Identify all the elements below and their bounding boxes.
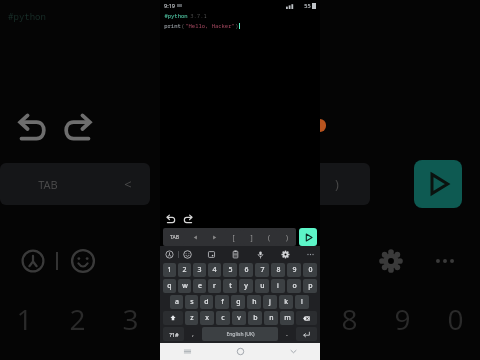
staticText: 8 xyxy=(341,300,358,338)
button[interactable]: Gboard xyxy=(164,249,175,260)
button[interactable]: 8 xyxy=(271,263,285,277)
button[interactable]: Home xyxy=(214,343,267,360)
staticText: 1 xyxy=(16,300,33,338)
staticText: u xyxy=(260,281,265,291)
staticText: n xyxy=(269,313,274,323)
staticText: z xyxy=(190,313,194,323)
staticText: m xyxy=(284,313,291,323)
staticText: [ xyxy=(232,233,235,242)
button[interactable]: ?1# xyxy=(163,327,184,341)
staticText: w xyxy=(182,281,188,291)
button[interactable]: 7 xyxy=(255,263,269,277)
button[interactable]: Voice input xyxy=(255,249,266,260)
button[interactable]: l xyxy=(295,295,309,309)
button[interactable]: e xyxy=(193,279,206,293)
button[interactable]: Run xyxy=(299,228,317,246)
button[interactable]: h xyxy=(247,295,261,309)
button[interactable]: t xyxy=(223,279,237,293)
staticText: 6 xyxy=(244,265,249,275)
staticText: #python xyxy=(164,12,188,19)
button[interactable]: Move right xyxy=(205,228,224,246)
button[interactable]: [ xyxy=(225,229,241,245)
button[interactable]: ] xyxy=(243,229,259,245)
button[interactable]: b xyxy=(248,311,262,325)
button[interactable]: Backspace xyxy=(296,311,317,325)
button[interactable]: Clipboard xyxy=(230,249,241,260)
button[interactable]: j xyxy=(263,295,277,309)
staticText: 3 xyxy=(197,265,202,275)
staticText: ) xyxy=(335,175,339,193)
button[interactable]: p xyxy=(303,279,317,293)
button[interactable]: 2 xyxy=(178,263,191,277)
button[interactable]: f xyxy=(215,295,229,309)
button[interactable]: 3 xyxy=(193,263,206,277)
staticText: 4 xyxy=(212,265,217,275)
button[interactable]: 9 xyxy=(287,263,301,277)
button[interactable]: q xyxy=(163,279,176,293)
staticText: ?1# xyxy=(169,331,179,338)
staticText: ) xyxy=(235,22,239,29)
staticText: o xyxy=(292,281,297,291)
button[interactable]: 5 xyxy=(223,263,237,277)
staticText: 55 xyxy=(304,2,311,9)
button[interactable]: v xyxy=(232,311,246,325)
button[interactable]: Emoji xyxy=(182,249,193,260)
button[interactable]: More options xyxy=(305,249,316,260)
staticText: 3.7.1 xyxy=(190,12,207,19)
staticText: p xyxy=(308,281,313,291)
button[interactable]: a xyxy=(170,295,183,309)
staticText: 0 xyxy=(308,265,313,275)
staticText: y xyxy=(244,281,248,291)
button[interactable]: u xyxy=(255,279,269,293)
button[interactable]: r xyxy=(208,279,221,293)
button[interactable]: ( xyxy=(261,229,277,245)
button[interactable]: Recents xyxy=(160,343,214,360)
button[interactable]: Settings xyxy=(280,249,291,260)
staticText: t xyxy=(229,281,232,291)
staticText: ) xyxy=(286,233,288,242)
button[interactable]: z xyxy=(185,311,198,325)
button[interactable]: Redo xyxy=(181,212,195,226)
button[interactable]: 1 xyxy=(163,263,176,277)
button[interactable]: g xyxy=(231,295,245,309)
staticText: k xyxy=(284,297,288,307)
staticText: TAB xyxy=(170,234,179,241)
staticText: i xyxy=(277,281,279,291)
staticText: 9:19 xyxy=(164,2,175,9)
button[interactable]: Move left xyxy=(186,228,205,246)
staticText: "Hello, Hacker" xyxy=(185,22,235,29)
staticText: TAB xyxy=(38,177,58,192)
button[interactable]: ) xyxy=(279,229,295,245)
staticText: 7 xyxy=(260,265,265,275)
button[interactable]: y xyxy=(239,279,253,293)
button[interactable]: s xyxy=(185,295,198,309)
staticText: . xyxy=(286,329,288,339)
button[interactable]: , xyxy=(186,327,200,341)
button[interactable]: Stickers xyxy=(206,249,217,260)
button[interactable]: 0 xyxy=(303,263,317,277)
button[interactable]: d xyxy=(200,295,213,309)
button[interactable]: 6 xyxy=(239,263,253,277)
button[interactable]: Back xyxy=(267,343,320,360)
staticText: g xyxy=(236,297,241,307)
button[interactable]: Shift xyxy=(163,311,183,325)
staticText: 2 xyxy=(182,265,187,275)
staticText: d xyxy=(204,297,209,307)
staticText: f xyxy=(221,297,224,307)
button[interactable]: TAB xyxy=(164,229,185,245)
button[interactable]: English (UK) xyxy=(202,327,278,341)
button[interactable]: k xyxy=(279,295,293,309)
staticText: a xyxy=(175,297,179,307)
button[interactable]: . xyxy=(280,327,294,341)
button[interactable]: x xyxy=(200,311,214,325)
button[interactable]: o xyxy=(287,279,301,293)
button[interactable]: i xyxy=(271,279,285,293)
button[interactable]: Enter xyxy=(296,327,317,341)
staticText: x xyxy=(205,313,209,323)
button[interactable]: 4 xyxy=(208,263,221,277)
button[interactable]: Undo xyxy=(163,212,177,226)
button[interactable]: c xyxy=(216,311,230,325)
button[interactable]: w xyxy=(178,279,191,293)
button[interactable]: m xyxy=(280,311,294,325)
button[interactable]: n xyxy=(264,311,278,325)
